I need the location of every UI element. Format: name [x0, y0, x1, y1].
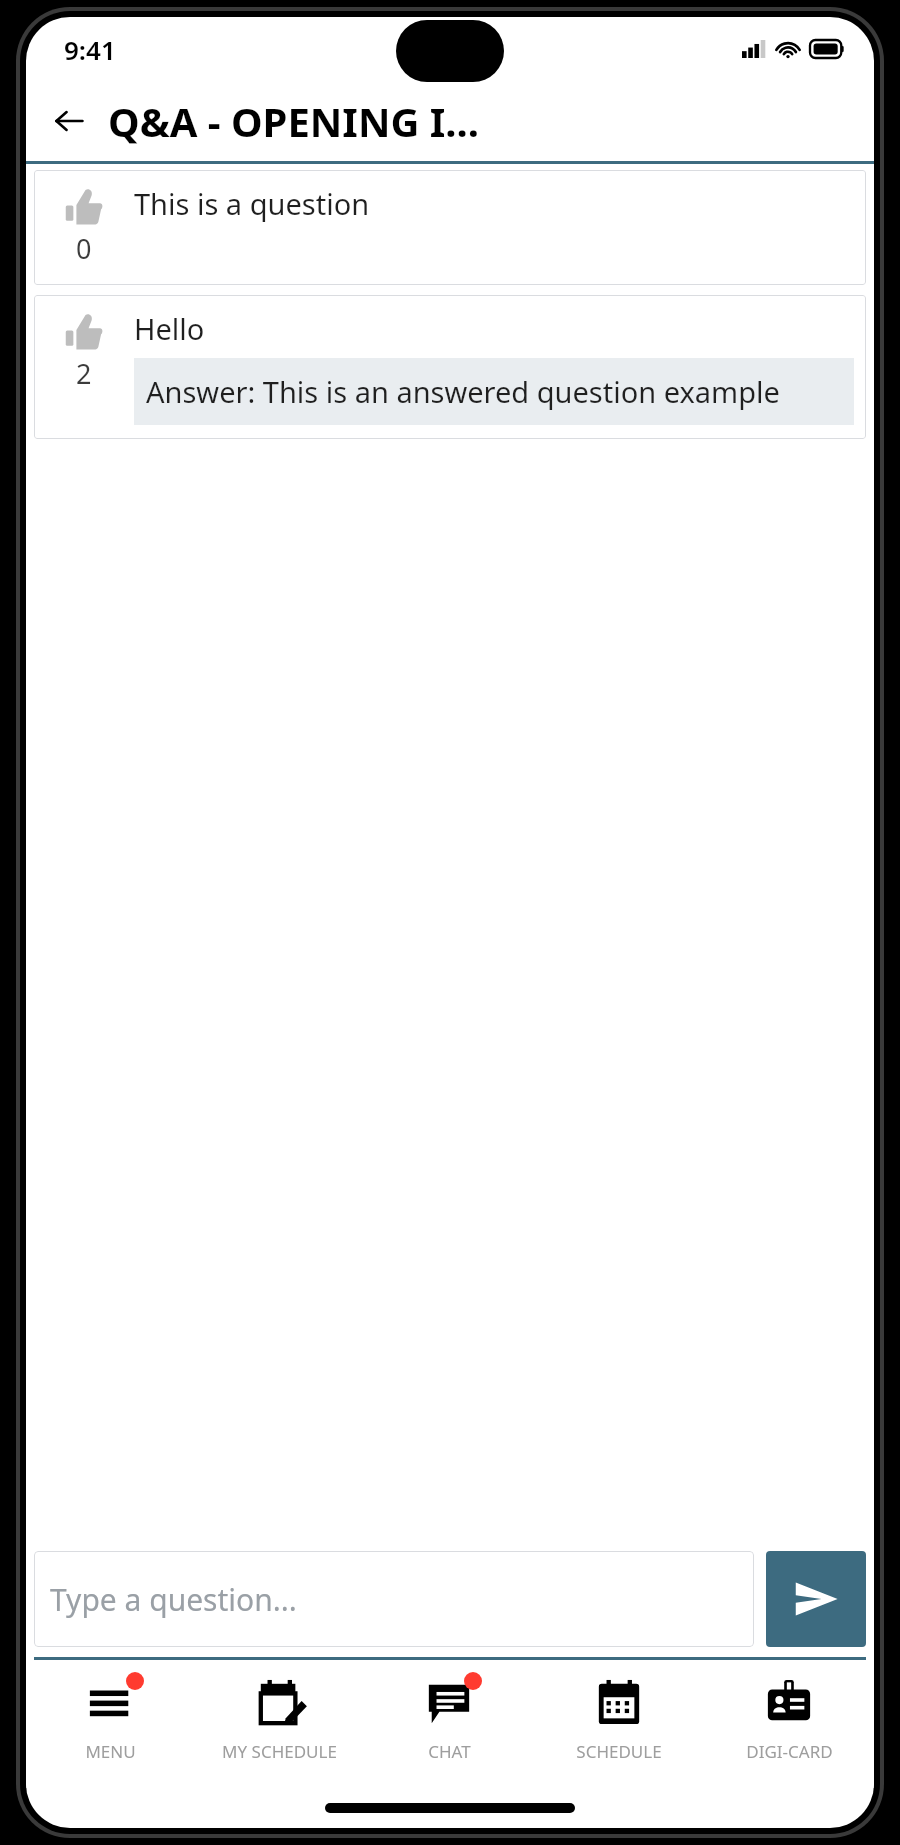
- button[interactable]: 0: [34, 170, 866, 285]
- staticText: 9:41: [64, 32, 116, 67]
- button[interactable]: DIGI-CARD: [704, 1660, 874, 1788]
- staticText: SCHEDULE: [576, 1740, 662, 1763]
- staticText: 2: [76, 355, 92, 392]
- staticText: DIGI-CARD: [746, 1740, 833, 1763]
- staticText: Hello: [134, 309, 205, 348]
- button[interactable]: MENU: [26, 1660, 195, 1788]
- button[interactable]: MY SCHEDULE: [195, 1660, 364, 1788]
- staticText: 0: [76, 230, 92, 267]
- staticText: MENU: [85, 1740, 136, 1763]
- staticText: MY SCHEDULE: [222, 1740, 337, 1763]
- button[interactable]: Back: [40, 92, 98, 150]
- button[interactable]: SCHEDULE: [534, 1660, 704, 1788]
- button[interactable]: Send: [766, 1551, 866, 1647]
- staticText: Q&A - OPENING I...: [108, 94, 480, 148]
- button[interactable]: 2: [34, 295, 866, 439]
- button[interactable]: Type a question...: [34, 1551, 754, 1647]
- staticText: Type a question...: [50, 1579, 297, 1620]
- staticText: Answer: This is an answered question exa…: [146, 372, 780, 411]
- staticText: CHAT: [428, 1740, 471, 1763]
- staticText: This is a question: [134, 184, 370, 223]
- button[interactable]: CHAT: [364, 1660, 534, 1788]
